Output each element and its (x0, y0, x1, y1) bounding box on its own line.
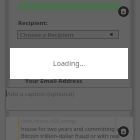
staticText: Bitcoin trillion-dollar fraud or with re… (21, 132, 120, 139)
staticText: Recipient: (18, 19, 48, 27)
button[interactable]: Add a caption (optional) (5, 87, 133, 111)
staticText: house for two years and committing a (21, 125, 120, 132)
staticText: Add a caption (optional) (7, 90, 75, 98)
button[interactable]: Choose a Recipient (17, 30, 119, 39)
staticText: mark, shares, ASX, energy (21, 118, 76, 124)
button[interactable]: More options (118, 126, 129, 137)
staticText: Loading... (53, 59, 86, 69)
button[interactable]: Account (118, 6, 129, 17)
button[interactable]: mark, shares, ASX, energy (6, 117, 133, 140)
staticText: Choose a Recipient (20, 31, 74, 39)
staticText: Your Email Address (25, 77, 83, 85)
